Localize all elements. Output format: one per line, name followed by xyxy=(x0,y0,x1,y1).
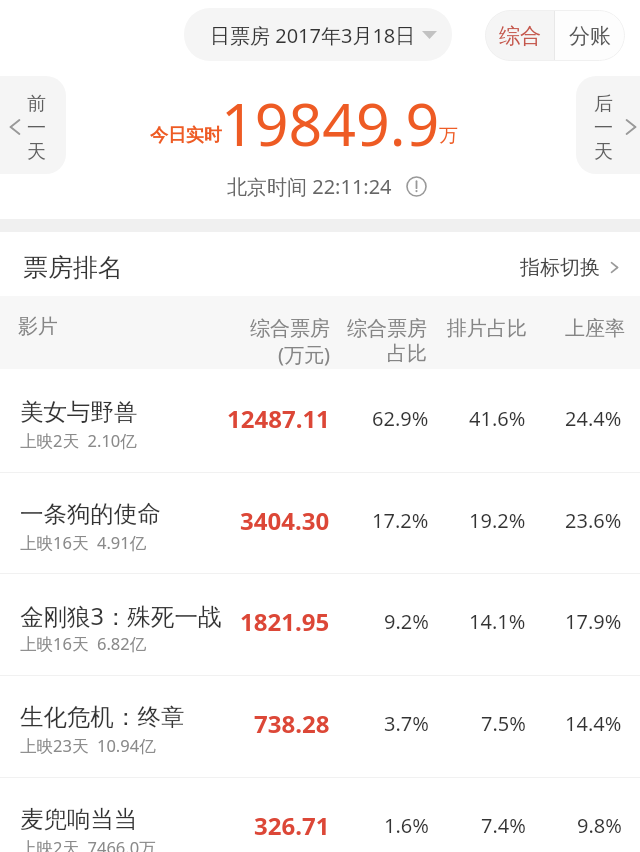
button[interactable]: 综合 xyxy=(485,10,554,61)
staticText: 麦兜响当当 xyxy=(20,804,138,834)
staticText: 17.9% xyxy=(565,608,622,635)
staticText: 北京时间 22:11:24 xyxy=(227,173,392,200)
staticText: 万 xyxy=(439,124,458,148)
staticText: 上映16天 6.82亿 xyxy=(20,632,147,655)
staticText: 19.2% xyxy=(469,507,526,534)
staticText: 14.4% xyxy=(565,710,622,737)
button[interactable]: 分账 xyxy=(555,10,625,61)
staticText: 上映23天 10.94亿 xyxy=(20,734,156,757)
staticText: 62.9% xyxy=(372,405,429,432)
staticText: 41.6% xyxy=(469,405,526,432)
staticText: 排片占比 xyxy=(447,316,527,341)
staticText: 美女与野兽 xyxy=(20,397,138,427)
staticText: 日票房 2017年3月18日 xyxy=(210,22,416,49)
staticText: 上映16天 4.91亿 xyxy=(20,531,147,554)
staticText: 综合票房 xyxy=(347,316,427,341)
staticText: (万元) xyxy=(278,341,330,368)
staticText: 指标切换 xyxy=(520,255,600,280)
staticText: 分账 xyxy=(569,23,611,49)
button[interactable]: 麦兜响当当 xyxy=(0,777,640,852)
staticText: 23.6% xyxy=(565,507,622,534)
button[interactable]: 美女与野兽 xyxy=(0,370,640,471)
staticText: 占比 xyxy=(387,341,427,366)
staticText: 上座率 xyxy=(565,316,625,341)
staticText: 影片 xyxy=(18,314,58,339)
staticText: 综合 xyxy=(499,23,541,49)
staticText: 24.4% xyxy=(565,405,622,432)
button[interactable]: 日票房 2017年3月18日 xyxy=(184,8,452,61)
button[interactable]: 一条狗的使命 xyxy=(0,472,640,573)
button[interactable]: 前一天 xyxy=(0,76,66,174)
staticText: 生化危机：终章 xyxy=(20,702,185,732)
staticText: 票房排名 xyxy=(23,252,123,283)
button[interactable]: 指标切换 xyxy=(520,243,622,291)
staticText: 738.28 xyxy=(254,707,330,740)
staticText: 1821.95 xyxy=(240,605,330,638)
staticText: 326.71 xyxy=(254,809,330,842)
staticText: 1.6% xyxy=(384,812,429,839)
staticText: 14.1% xyxy=(469,608,526,635)
staticText: 上映2天 7466.0万 xyxy=(20,836,156,852)
staticText: 综合票房 xyxy=(250,316,330,341)
staticText: 上映2天 2.10亿 xyxy=(20,429,137,452)
staticText: 12487.11 xyxy=(227,402,330,435)
staticText: 今日实时 xyxy=(150,124,222,147)
staticText: 一条狗的使命 xyxy=(20,499,161,529)
button[interactable]: 生化危机：终章 xyxy=(0,675,640,776)
button[interactable]: 后一天 xyxy=(576,76,640,174)
staticText: 后 一 天 xyxy=(594,92,613,164)
staticText: 17.2% xyxy=(372,507,429,534)
staticText: 7.4% xyxy=(481,812,526,839)
staticText: 3404.30 xyxy=(240,504,330,537)
staticText: 7.5% xyxy=(481,710,526,737)
staticText: 19849.9 xyxy=(221,83,440,163)
staticText: 前 一 天 xyxy=(27,92,46,164)
staticText: 3.7% xyxy=(384,710,429,737)
staticText: 金刚狼3：殊死一战 xyxy=(20,600,222,632)
button[interactable]: 说明 xyxy=(406,176,427,197)
staticText: 9.8% xyxy=(577,812,622,839)
staticText: 9.2% xyxy=(384,608,429,635)
button[interactable]: 金刚狼3：殊死一战 xyxy=(0,573,640,674)
